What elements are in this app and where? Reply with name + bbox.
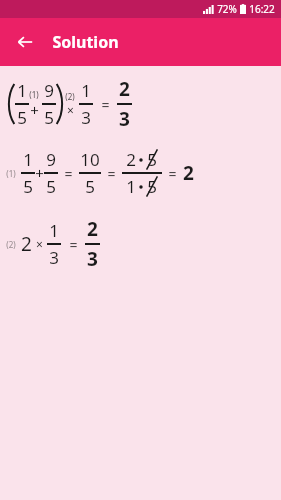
staticText: 9 [46,148,56,171]
staticText: 1 [17,79,27,102]
staticText: + [30,100,39,120]
staticText: 5 [17,106,27,129]
staticText: 1 [126,175,136,198]
staticText: 1 [49,219,59,242]
staticText: 2 [126,148,136,171]
staticText: 3 [87,246,98,272]
staticText: 1 [23,148,33,171]
staticText: (1) [6,168,16,179]
staticText: 5 [23,175,33,198]
button[interactable]: Back [10,27,40,57]
staticText: = [101,95,110,114]
staticText: × [36,236,43,252]
staticText: 5 [46,175,56,198]
staticText: 5 [85,175,95,198]
staticText: = [69,235,78,254]
staticText: (2) [6,239,16,250]
staticText: + [35,163,44,183]
staticText: 10 [80,148,100,171]
staticText: 3 [119,106,130,132]
staticText: = [168,164,177,183]
staticText: 16:22 [249,2,275,16]
staticText: Solution [52,31,119,53]
staticText: 2 [183,160,194,186]
staticText: 5 [44,106,54,129]
staticText: 9 [44,79,54,102]
staticText: (1) [29,89,39,100]
staticText: × [67,102,74,118]
staticText: 5 [147,148,157,171]
staticText: 1 [81,79,91,102]
staticText: 5 [147,175,157,198]
staticText: (2) [65,91,75,102]
staticText: 2 [87,216,98,242]
staticText: 3 [81,106,91,129]
staticText: 2 [119,76,130,102]
staticText: 72% [217,2,237,16]
staticText: = [107,164,116,183]
staticText: 2 [21,231,32,257]
staticText: = [64,164,73,183]
staticText: 3 [49,246,59,269]
